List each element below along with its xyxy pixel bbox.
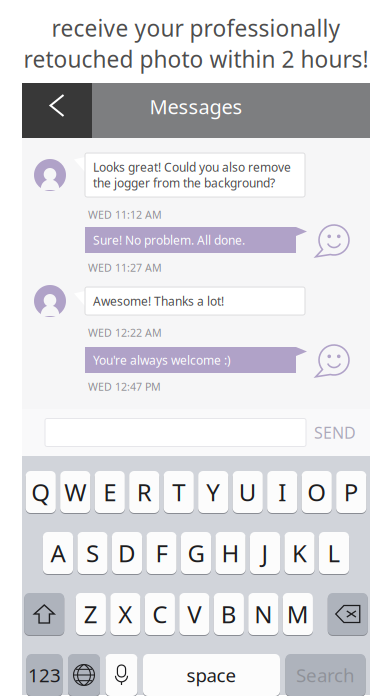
staticText: WED 12:47 PM bbox=[88, 379, 161, 394]
button[interactable]: Search bbox=[285, 653, 365, 696]
button[interactable]: Delete bbox=[328, 592, 368, 636]
button[interactable]: J bbox=[250, 531, 280, 575]
staticText: D bbox=[118, 537, 136, 569]
button[interactable]: Next keyboard bbox=[68, 653, 100, 696]
button[interactable]: space bbox=[143, 653, 280, 696]
button[interactable]: Back bbox=[22, 83, 92, 138]
staticText: E bbox=[103, 476, 116, 508]
button[interactable]: Message field bbox=[45, 418, 306, 446]
staticText: B bbox=[221, 598, 237, 630]
staticText: Q bbox=[31, 476, 50, 508]
button[interactable]: U bbox=[233, 470, 263, 514]
button[interactable]: H bbox=[215, 531, 246, 575]
button[interactable]: V bbox=[179, 592, 209, 636]
staticText: W bbox=[64, 476, 86, 508]
staticText: G bbox=[187, 537, 204, 569]
staticText: Search bbox=[296, 663, 355, 687]
staticText: space bbox=[186, 663, 236, 687]
button[interactable]: SEND bbox=[310, 418, 360, 446]
staticText: WED 11:12 AM bbox=[88, 207, 162, 222]
button[interactable]: C bbox=[145, 592, 175, 636]
staticText: C bbox=[152, 598, 167, 630]
staticText: Z bbox=[84, 598, 98, 630]
button[interactable]: X bbox=[110, 592, 140, 636]
staticText: receive your professionally bbox=[51, 13, 340, 43]
staticText: T bbox=[172, 476, 185, 508]
staticText: J bbox=[261, 537, 268, 569]
staticText: retouched photo within 2 hours! bbox=[23, 44, 368, 74]
staticText: U bbox=[239, 476, 257, 508]
staticText: X bbox=[118, 598, 132, 630]
staticText: Awesome! Thanks a lot! bbox=[93, 293, 224, 309]
button[interactable]: N bbox=[248, 592, 278, 636]
button[interactable]: P bbox=[336, 470, 366, 514]
button[interactable]: F bbox=[146, 531, 177, 575]
staticText: Looks great! Could you also remove the j… bbox=[93, 159, 291, 191]
button[interactable]: O bbox=[302, 470, 332, 514]
staticText: S bbox=[86, 537, 99, 569]
staticText: R bbox=[137, 476, 152, 508]
staticText: Y bbox=[206, 476, 220, 508]
staticText: WED 12:22 AM bbox=[88, 325, 162, 340]
staticText: Messages bbox=[149, 93, 242, 120]
button[interactable]: Q bbox=[26, 470, 56, 514]
staticText: F bbox=[155, 537, 167, 569]
staticText: O bbox=[307, 476, 326, 508]
staticText: H bbox=[221, 537, 239, 569]
staticText: A bbox=[50, 537, 65, 569]
button[interactable]: K bbox=[284, 531, 315, 575]
staticText: 123 bbox=[28, 663, 61, 687]
button[interactable]: Shift bbox=[24, 592, 64, 636]
staticText: V bbox=[187, 598, 201, 630]
staticText: I bbox=[278, 476, 286, 508]
button[interactable]: G bbox=[181, 531, 211, 575]
button[interactable]: 123 bbox=[26, 653, 62, 696]
staticText: You're always welcome :) bbox=[93, 352, 231, 368]
button[interactable]: Z bbox=[76, 592, 106, 636]
button[interactable]: I bbox=[267, 470, 297, 514]
button[interactable]: S bbox=[77, 531, 108, 575]
button[interactable]: R bbox=[129, 470, 159, 514]
staticText: P bbox=[344, 476, 359, 508]
button[interactable]: W bbox=[60, 470, 90, 514]
button[interactable]: T bbox=[164, 470, 194, 514]
staticText: N bbox=[254, 598, 272, 630]
button[interactable]: B bbox=[214, 592, 244, 636]
staticText: L bbox=[327, 537, 340, 569]
button[interactable]: L bbox=[319, 531, 349, 575]
staticText: K bbox=[292, 537, 307, 569]
button[interactable]: A bbox=[43, 531, 73, 575]
button[interactable]: Dictation bbox=[105, 653, 137, 696]
button[interactable]: Y bbox=[198, 470, 228, 514]
button[interactable]: D bbox=[112, 531, 142, 575]
staticText: M bbox=[287, 598, 309, 630]
staticText: SEND bbox=[314, 422, 356, 443]
staticText: Sure! No problem. All done. bbox=[93, 232, 245, 248]
button[interactable]: E bbox=[95, 470, 125, 514]
staticText: WED 11:27 AM bbox=[88, 260, 162, 275]
button[interactable]: M bbox=[283, 592, 313, 636]
